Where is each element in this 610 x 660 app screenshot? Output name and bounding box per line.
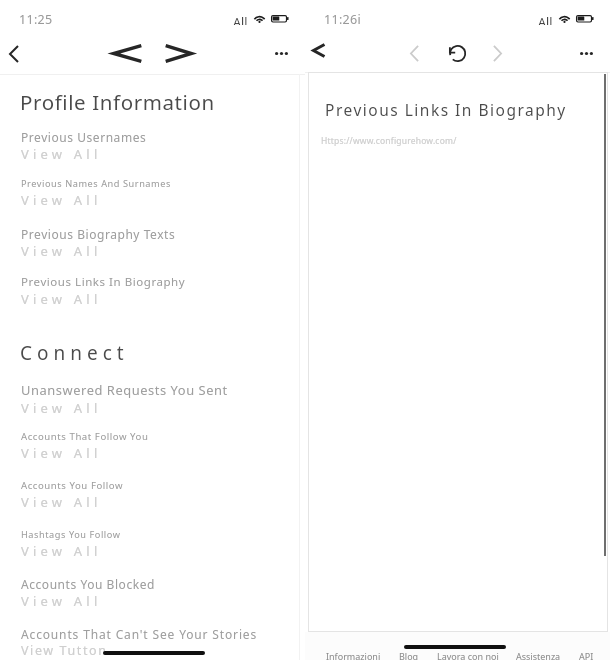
staticText: Accounts You Blocked <box>21 576 155 592</box>
button[interactable]: Informazioni <box>326 650 381 660</box>
staticText: View All <box>21 145 102 163</box>
button[interactable]: Forward <box>483 39 511 67</box>
staticText: Https://www.configurehow.com/ <box>321 135 457 147</box>
staticText: Accounts That Follow You <box>21 430 149 443</box>
staticText: View All <box>21 542 102 560</box>
button[interactable]: Previous <box>104 37 151 69</box>
button[interactable]: Accounts That Can't See Your Stories <box>0 621 305 660</box>
staticText: Previous Links In Biography <box>21 274 186 290</box>
staticText: Connect <box>20 340 129 366</box>
staticText: 11:25 <box>19 11 53 28</box>
button[interactable]: Reload <box>446 43 466 63</box>
staticText: Previous Links In Biography <box>325 99 567 120</box>
button[interactable]: Previous Biography Texts <box>0 221 305 265</box>
button[interactable]: More options <box>571 40 601 66</box>
button[interactable]: Go back <box>400 39 428 67</box>
staticText: Unanswered Requests You Sent <box>21 381 228 399</box>
staticText: View Tutton <box>21 642 108 659</box>
button[interactable]: Next <box>155 37 202 69</box>
staticText: Assistenza <box>516 650 561 660</box>
staticText: Informazioni <box>326 650 381 660</box>
staticText: View All <box>21 493 102 511</box>
staticText: Blog <box>399 650 419 660</box>
staticText: Profile Information <box>20 88 215 116</box>
staticText: Lavora con noi <box>437 650 499 660</box>
staticText: All <box>538 14 553 25</box>
staticText: Accounts You Follow <box>21 479 124 492</box>
button[interactable]: Previous Names And Surnames <box>0 172 305 216</box>
button[interactable]: Accounts You Blocked <box>0 571 305 615</box>
staticText: 11:26i <box>324 11 361 28</box>
button[interactable]: API <box>579 650 594 660</box>
button[interactable]: More options <box>266 40 296 66</box>
button[interactable]: Blog <box>399 650 419 660</box>
staticText: All <box>233 14 248 25</box>
button[interactable]: Previous Links In Biography <box>0 269 305 313</box>
staticText: View All <box>21 191 102 209</box>
staticText: View All <box>21 444 102 462</box>
button[interactable]: Unanswered Requests You Sent <box>0 376 305 420</box>
staticText: View All <box>21 290 102 308</box>
staticText: API <box>579 650 594 660</box>
staticText: View All <box>21 242 102 260</box>
staticText: View All <box>21 399 102 417</box>
staticText: Previous Names And Surnames <box>21 177 171 190</box>
staticText: Accounts That Can't See Your Stories <box>21 626 258 642</box>
button[interactable]: Back <box>305 36 333 64</box>
staticText: Previous Biography Texts <box>21 226 176 242</box>
button[interactable]: Lavora con noi <box>437 650 499 660</box>
button[interactable]: Accounts You Follow <box>0 474 305 518</box>
staticText: View All <box>21 592 102 610</box>
button[interactable]: Previous Usernames <box>0 124 305 168</box>
button[interactable]: Assistenza <box>516 650 561 660</box>
staticText: Previous Usernames <box>21 129 147 145</box>
staticText: Hashtags You Follow <box>21 528 121 541</box>
button[interactable]: Hashtags You Follow <box>0 523 305 567</box>
button[interactable]: Accounts That Follow You <box>0 425 305 469</box>
button[interactable]: Back <box>0 40 28 68</box>
